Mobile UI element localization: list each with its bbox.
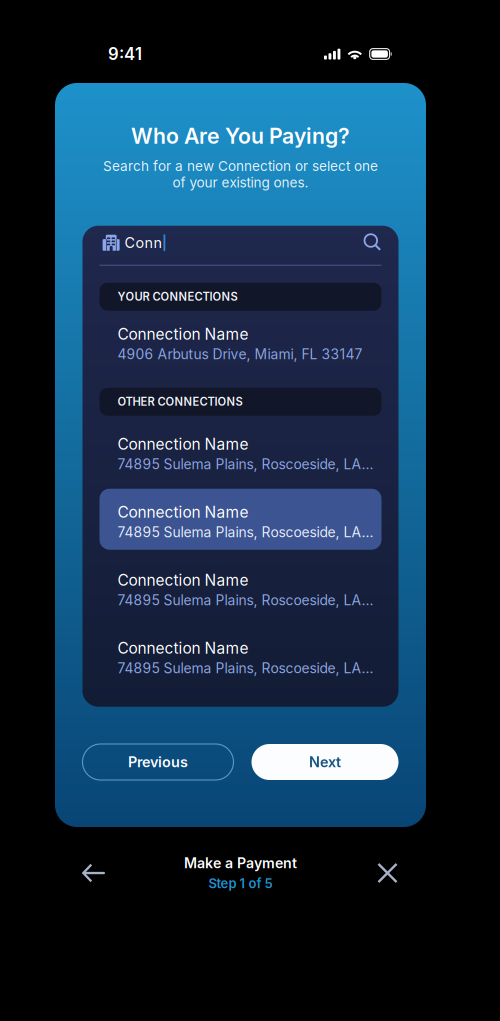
button[interactable]: Previous xyxy=(82,744,233,780)
staticText: Make a Payment xyxy=(184,854,297,872)
staticText: 4906 Arbutus Drive, Miami, FL 33147 xyxy=(117,346,362,362)
staticText: 74895 Sulema Plains, Roscoeside, LA... xyxy=(117,456,373,472)
button[interactable]: Connection Name xyxy=(99,311,381,372)
staticText: Who Are You Paying? xyxy=(131,123,350,149)
staticText: of your existing ones. xyxy=(172,174,308,191)
staticText: Connection Name xyxy=(117,639,248,657)
button[interactable]: Connection Name xyxy=(99,421,381,482)
staticText: Conn xyxy=(124,234,162,251)
staticText: Step 1 of 5 xyxy=(208,876,272,891)
button[interactable]: Next xyxy=(251,744,398,780)
staticText: 74895 Sulema Plains, Roscoeside, LA... xyxy=(117,524,373,540)
staticText: 9:41 xyxy=(108,44,142,64)
button[interactable]: Connection Name xyxy=(99,557,381,618)
staticText: OTHER CONNECTIONS xyxy=(117,395,242,408)
button[interactable]: Connection Name xyxy=(99,489,381,550)
staticText: YOUR CONNECTIONS xyxy=(117,290,237,303)
staticText: Next xyxy=(309,753,341,771)
button[interactable]: Connection Name xyxy=(99,625,381,686)
staticText: Connection Name xyxy=(117,503,248,521)
staticText: Previous xyxy=(128,753,188,771)
button[interactable]: Back xyxy=(70,853,116,893)
staticText: Search for a new Connection or select on… xyxy=(103,158,378,174)
staticText: Connection Name xyxy=(117,435,248,453)
staticText: Connection Name xyxy=(117,325,248,343)
button[interactable]: Close xyxy=(364,853,410,893)
button[interactable]: Search xyxy=(364,234,381,251)
staticText: 74895 Sulema Plains, Roscoeside, LA... xyxy=(117,660,373,676)
staticText: Connection Name xyxy=(117,571,248,589)
staticText: 74895 Sulema Plains, Roscoeside, LA... xyxy=(117,592,373,608)
